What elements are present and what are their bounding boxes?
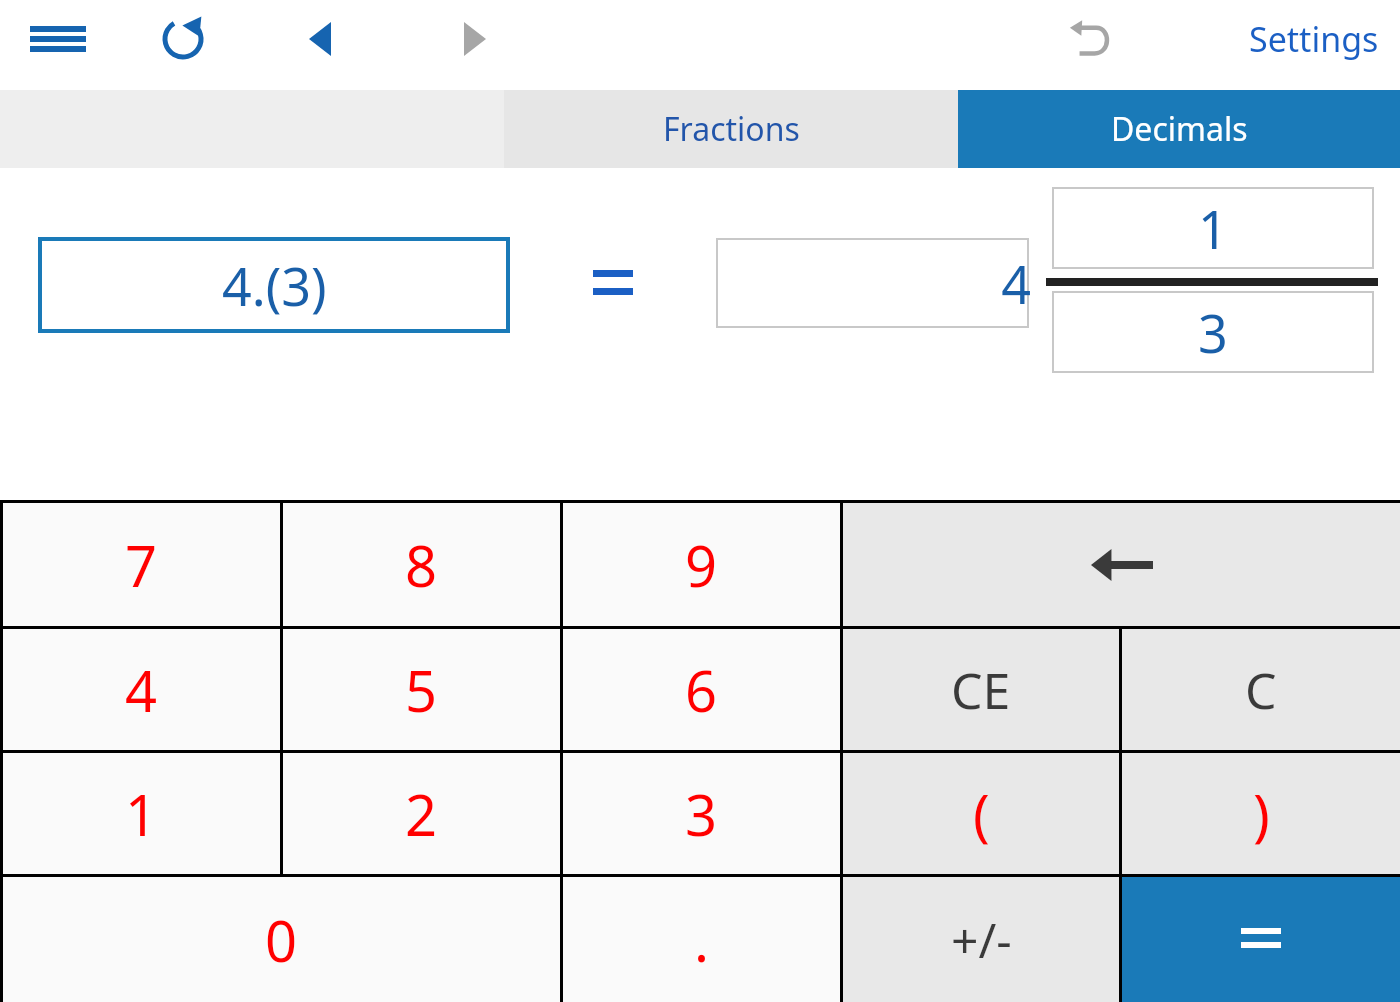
button[interactable]: 9 [563,503,840,626]
staticText: 4.(3) [222,250,327,321]
staticText: 4 [125,652,158,728]
button[interactable]: +/- [843,877,1119,1002]
staticText: ( [973,776,990,852]
button[interactable]: 1 [1054,189,1372,267]
button[interactable]: Previous [288,8,352,70]
staticText: C [1245,656,1277,724]
button[interactable]: ) [1122,753,1400,874]
button[interactable]: 5 [283,629,560,750]
staticText: ) [1253,776,1270,852]
button[interactable]: CE [843,629,1119,750]
button[interactable]: 6 [563,629,840,750]
staticText: 3 [685,776,718,852]
button[interactable]: 4.(3) [42,241,506,329]
button[interactable]: 1 [3,753,280,874]
button[interactable]: Next [443,8,507,70]
button[interactable]: Decimals [958,90,1400,168]
staticText: 3 [1198,297,1228,368]
staticText: 8 [405,527,438,603]
staticText: Settings [1249,16,1379,62]
button[interactable]: 0 [3,877,560,1002]
staticText: 9 [685,527,718,603]
staticText: 1 [1198,193,1228,264]
staticText: 6 [685,652,718,728]
button[interactable]: 7 [3,503,280,626]
staticText: 1 [125,776,158,852]
button[interactable]: Backspace [843,503,1400,626]
staticText: CE [951,656,1011,724]
staticText: +/- [951,907,1012,972]
button[interactable]: 4 [718,240,1027,326]
staticText: 0 [265,902,298,978]
button[interactable]: 8 [283,503,560,626]
button[interactable]: Fractions [504,90,958,168]
staticText: Decimals [1111,107,1248,151]
button[interactable]: 3 [1054,293,1372,371]
staticText: . [694,902,710,978]
button[interactable]: . [563,877,840,1002]
button[interactable]: Menu [18,12,98,66]
button[interactable]: ( [843,753,1119,874]
staticText: 5 [405,652,438,728]
button[interactable]: 3 [563,753,840,874]
staticText: 4 [1001,248,1031,319]
button[interactable]: Equals [1122,877,1400,1002]
staticText: 7 [125,527,158,603]
button[interactable]: 4 [3,629,280,750]
staticText: Fractions [663,107,800,151]
button[interactable]: 2 [283,753,560,874]
button[interactable]: Settings [1230,6,1398,72]
button[interactable]: C [1122,629,1400,750]
button[interactable]: Refresh [150,6,216,72]
staticText: 2 [405,776,438,852]
button[interactable]: Undo [1055,6,1127,72]
